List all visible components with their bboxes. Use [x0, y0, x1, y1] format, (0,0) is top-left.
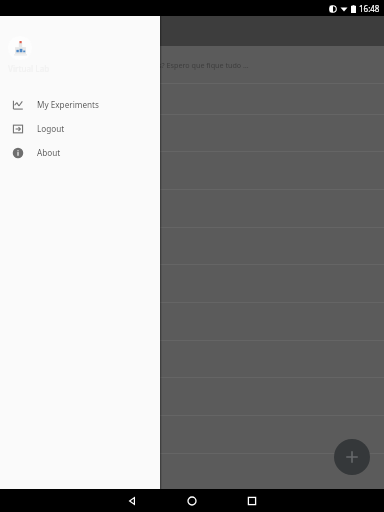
button[interactable] [0, 190, 384, 227]
button[interactable]: Recent apps [233, 489, 271, 512]
staticText: My Experiments [37, 99, 99, 110]
button[interactable]: About [0, 140, 160, 164]
button[interactable] [0, 378, 384, 415]
button[interactable] [0, 265, 384, 302]
button[interactable]: Add experiment [334, 439, 370, 475]
button[interactable] [0, 416, 384, 453]
staticText: druc. [12, 94, 30, 104]
button[interactable]: My Experiments [0, 92, 160, 116]
button[interactable]: druc. [0, 84, 384, 114]
button[interactable]: Home [173, 489, 211, 512]
staticText: 16:48 [359, 3, 380, 14]
staticText: o que acontecerá na exibição dos resulta… [12, 60, 249, 70]
button[interactable]: Logout [0, 116, 160, 140]
button[interactable] [0, 491, 384, 512]
button[interactable] [0, 228, 384, 264]
staticText: Logout [37, 123, 65, 134]
button[interactable] [0, 115, 384, 151]
button[interactable] [0, 454, 384, 490]
staticText: About [37, 147, 61, 158]
button[interactable] [0, 303, 384, 340]
button[interactable]: o que acontecerá na exibição dos resulta… [0, 46, 384, 83]
button[interactable] [0, 341, 384, 377]
button[interactable] [0, 152, 384, 189]
button[interactable]: Back [113, 489, 151, 512]
button[interactable]: Profile [8, 36, 32, 60]
